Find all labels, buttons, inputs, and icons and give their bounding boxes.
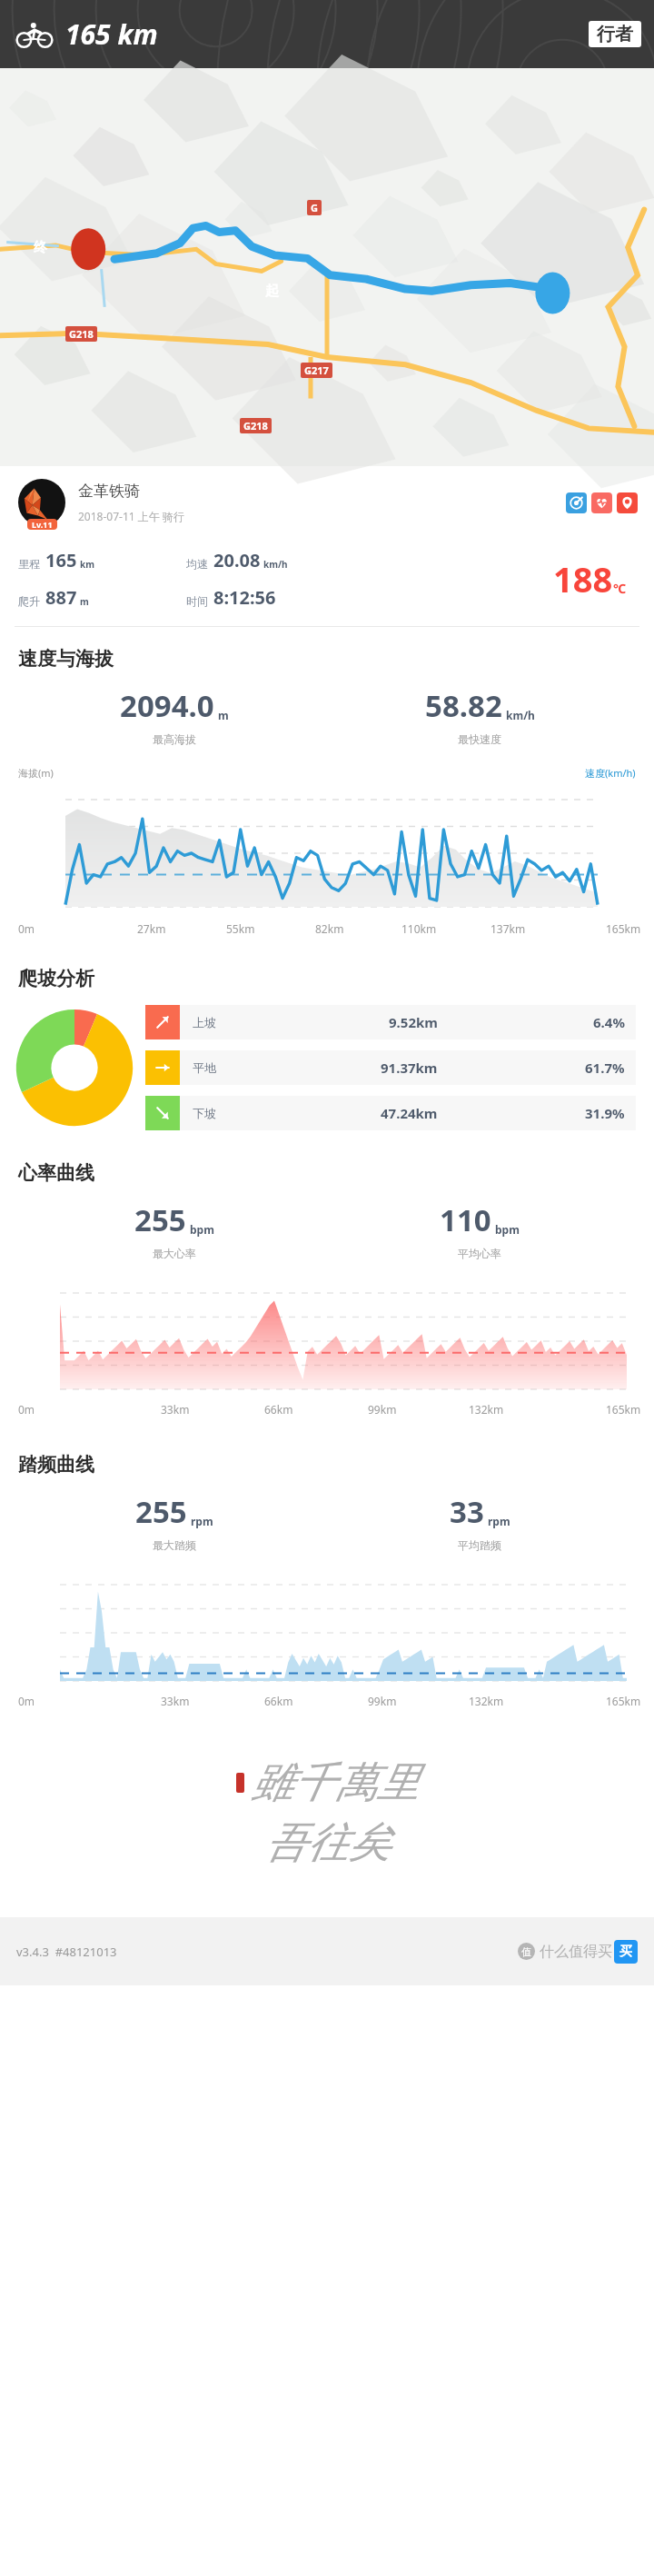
staticText: 最快速度 (458, 732, 501, 746)
staticText: 99km (368, 1694, 397, 1708)
staticText: v3.4.3 #48121013 (16, 1944, 117, 1960)
staticText: 58.82 (425, 685, 502, 726)
staticText: 6.4% (593, 1013, 625, 1031)
staticText: Lv.11 (32, 519, 53, 530)
staticText: 33km (161, 1694, 190, 1708)
staticText: 海拔(m) (18, 766, 54, 780)
staticText: G218 (243, 419, 268, 433)
staticText: km (80, 558, 94, 571)
staticText: 255 (135, 1491, 187, 1532)
button[interactable]: 行者 (597, 23, 633, 45)
staticText: 165km (606, 1402, 641, 1417)
staticText: G218 (69, 327, 94, 341)
staticText: 上坡 (193, 1015, 216, 1029)
staticText: 时间 (186, 594, 208, 608)
staticText: 33km (161, 1402, 190, 1417)
staticText: 66km (264, 1402, 293, 1417)
staticText: 27km (137, 921, 166, 936)
staticText: 下坡 (193, 1106, 216, 1120)
button[interactable]: 平地 (145, 1050, 636, 1085)
staticText: 165km (606, 1694, 641, 1708)
staticText: 买 (619, 1944, 632, 1960)
staticText: 心率曲线 (18, 1161, 94, 1185)
staticText: 最高海拔 (153, 732, 196, 746)
staticText: 55km (226, 921, 255, 936)
staticText: 2094.0 (120, 685, 214, 726)
staticText: 雖千萬里 (252, 1756, 419, 1809)
staticText: 什么值得买 (540, 1943, 612, 1961)
staticText: 91.37km (381, 1059, 438, 1077)
staticText: m (80, 595, 89, 608)
staticText: 165 km (65, 15, 158, 53)
staticText: m (218, 708, 229, 722)
staticText: rpm (488, 1514, 510, 1528)
staticText: 起 (265, 283, 279, 300)
staticText: 爬升 (18, 594, 40, 608)
staticText: 255 (134, 1199, 186, 1240)
staticText: 132km (469, 1694, 504, 1708)
staticText: 平地 (193, 1060, 216, 1075)
staticText: 平均心率 (458, 1247, 501, 1260)
staticText: 132km (469, 1402, 504, 1417)
staticText: 9.52km (389, 1013, 438, 1031)
button[interactable]: Heart rate badge (591, 492, 612, 513)
staticText: 平均踏频 (458, 1538, 501, 1552)
staticText: 47.24km (381, 1104, 438, 1122)
staticText: 31.9% (585, 1104, 625, 1122)
staticText: 0m (18, 1694, 35, 1708)
staticText: 8:12:56 (213, 585, 276, 610)
staticText: 金革铁骑 (78, 482, 140, 501)
staticText: 速度(km/h) (585, 766, 636, 780)
staticText: 爬坡分析 (18, 967, 94, 990)
staticText: 吾往矣 (265, 1816, 391, 1869)
staticText: 188 (553, 555, 613, 602)
staticText: rpm (191, 1514, 213, 1528)
staticText: 速度与海拔 (18, 647, 114, 671)
staticText: km/h (506, 708, 535, 722)
staticText: 踏频曲线 (18, 1453, 94, 1477)
staticText: 值 (521, 1945, 531, 1958)
staticText: 0m (18, 921, 35, 936)
staticText: 165km (606, 921, 641, 936)
staticText: 137km (490, 921, 526, 936)
button[interactable]: 下坡 (145, 1096, 636, 1130)
staticText: 均速 (186, 557, 208, 571)
staticText: 里程 (18, 557, 40, 571)
staticText: 66km (264, 1694, 293, 1708)
staticText: G (311, 201, 318, 214)
button[interactable]: SMZDM logo (614, 1940, 638, 1964)
staticText: 61.7% (585, 1059, 625, 1077)
staticText: ℃ (613, 580, 627, 597)
staticText: 行者 (597, 23, 633, 45)
staticText: 33 (450, 1491, 484, 1532)
staticText: 2018-07-11 上午 骑行 (78, 509, 184, 523)
button[interactable]: Route badge (566, 492, 587, 513)
staticText: 165 (45, 548, 77, 572)
staticText: 82km (315, 921, 344, 936)
staticText: 0m (18, 1402, 35, 1417)
button[interactable]: Location badge (617, 492, 638, 513)
staticText: 110km (401, 921, 437, 936)
staticText: 最大心率 (153, 1247, 196, 1260)
staticText: 99km (368, 1402, 397, 1417)
staticText: 110 (440, 1199, 491, 1240)
staticText: 887 (45, 585, 77, 610)
staticText: bpm (190, 1222, 214, 1237)
staticText: G217 (304, 363, 329, 377)
staticText: km/h (263, 558, 288, 571)
staticText: 最大踏频 (153, 1538, 196, 1552)
staticText: bpm (495, 1222, 520, 1237)
staticText: 20.08 (213, 548, 261, 572)
staticText: 终 (34, 239, 47, 256)
button[interactable]: 上坡 (145, 1005, 636, 1039)
